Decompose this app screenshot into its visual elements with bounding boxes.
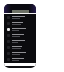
button[interactable]: [4, 38, 36, 44]
button[interactable]: [4, 26, 36, 32]
button[interactable]: [4, 56, 36, 62]
button[interactable]: [4, 14, 36, 20]
button[interactable]: [4, 32, 36, 38]
button[interactable]: [4, 44, 36, 50]
button[interactable]: [4, 20, 36, 26]
button[interactable]: [4, 50, 36, 56]
